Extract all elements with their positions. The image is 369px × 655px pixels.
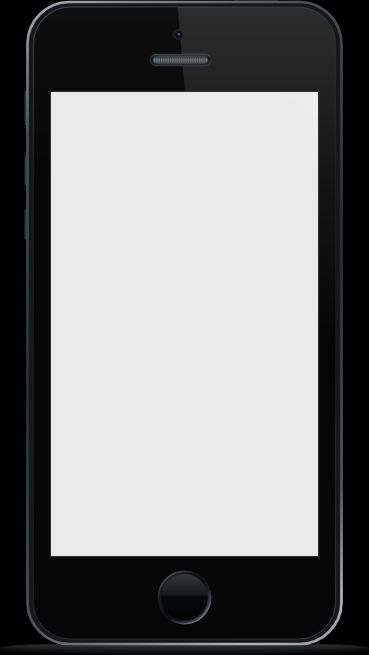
button[interactable]: Home [158, 571, 211, 624]
other: iPhone device mockup, blank screen [0, 0, 369, 655]
